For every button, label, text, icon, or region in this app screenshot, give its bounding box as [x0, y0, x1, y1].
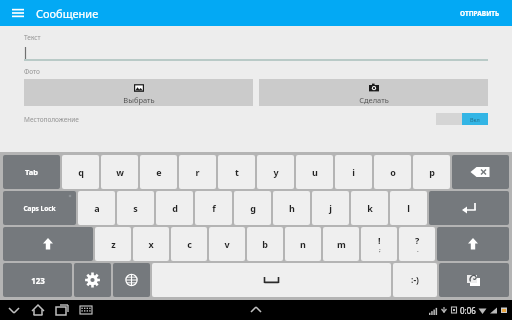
button[interactable]: ?: [399, 227, 435, 261]
button[interactable]: q: [62, 155, 99, 189]
staticText: o: [390, 166, 396, 178]
button[interactable]: e: [140, 155, 177, 189]
button[interactable]: k: [351, 191, 388, 225]
button[interactable]: j: [312, 191, 349, 225]
button[interactable]: c: [171, 227, 207, 261]
staticText: e: [156, 166, 162, 178]
button[interactable]: s: [117, 191, 154, 225]
staticText: !: [378, 234, 381, 246]
button[interactable]: l: [390, 191, 427, 225]
button[interactable]: d: [156, 191, 193, 225]
staticText: n: [300, 238, 306, 250]
staticText: z: [111, 238, 116, 250]
staticText: d: [172, 202, 178, 214]
button[interactable]: n: [285, 227, 321, 261]
staticText: i: [352, 166, 355, 178]
button[interactable]: Выбрать: [24, 79, 253, 106]
staticText: 123: [31, 275, 45, 286]
staticText: Текст: [24, 33, 41, 42]
button[interactable]: i: [335, 155, 372, 189]
staticText: m: [337, 238, 346, 250]
staticText: x: [148, 238, 154, 250]
button[interactable]: :-): [393, 263, 437, 297]
button[interactable]: r: [179, 155, 216, 189]
button[interactable]: Space: [152, 263, 391, 297]
staticText: ?: [415, 234, 420, 246]
button[interactable]: Attach: [439, 263, 509, 297]
button[interactable]: Местоположение включено: [436, 113, 488, 125]
staticText: Caps Lock: [23, 204, 56, 213]
button[interactable]: [24, 45, 488, 61]
button[interactable]: Tab: [3, 155, 60, 189]
button[interactable]: t: [218, 155, 255, 189]
staticText: q: [78, 166, 84, 178]
button[interactable]: Settings: [74, 263, 111, 297]
staticText: c: [187, 238, 192, 250]
button[interactable]: o: [374, 155, 411, 189]
staticText: Tab: [25, 167, 38, 177]
button[interactable]: h: [273, 191, 310, 225]
staticText: f: [212, 202, 216, 214]
button[interactable]: Caps Lock: [3, 191, 76, 225]
staticText: s: [133, 202, 138, 214]
staticText: u: [312, 166, 318, 178]
button[interactable]: 123: [3, 263, 72, 297]
button[interactable]: Shift: [3, 227, 93, 261]
button[interactable]: Menu: [8, 3, 28, 23]
button[interactable]: Change language: [113, 263, 150, 297]
button[interactable]: Сделать: [259, 79, 488, 106]
button[interactable]: u: [296, 155, 333, 189]
staticText: 0:06: [460, 305, 476, 316]
button[interactable]: z: [95, 227, 131, 261]
button[interactable]: Expand: [248, 302, 264, 318]
staticText: ОТПРАВИТЬ: [460, 9, 500, 18]
button[interactable]: Recents: [54, 302, 70, 318]
button[interactable]: Enter: [429, 191, 509, 225]
button[interactable]: p: [413, 155, 450, 189]
staticText: g: [250, 202, 256, 214]
staticText: Местоположение: [24, 115, 79, 124]
button[interactable]: !: [361, 227, 397, 261]
staticText: Сделать: [359, 95, 389, 105]
staticText: ;: [379, 246, 381, 254]
button[interactable]: x: [133, 227, 169, 261]
button[interactable]: Hide keyboard: [6, 302, 22, 318]
staticText: a: [94, 202, 100, 214]
button[interactable]: Shift: [437, 227, 509, 261]
staticText: k: [367, 202, 373, 214]
staticText: j: [329, 202, 332, 214]
staticText: b: [262, 238, 268, 250]
staticText: v: [224, 238, 230, 250]
staticText: t: [235, 166, 239, 178]
button[interactable]: w: [101, 155, 138, 189]
staticText: r: [195, 166, 200, 178]
button[interactable]: g: [234, 191, 271, 225]
staticText: h: [289, 202, 295, 214]
staticText: Выбрать: [123, 95, 155, 105]
button[interactable]: Home: [30, 302, 46, 318]
staticText: :-): [411, 274, 419, 286]
staticText: Сообщение: [36, 6, 99, 21]
staticText: w: [116, 166, 124, 178]
staticText: Вкл: [470, 116, 480, 123]
button[interactable]: y: [257, 155, 294, 189]
staticText: l: [407, 202, 410, 214]
staticText: Фото: [24, 67, 40, 76]
button[interactable]: Backspace: [452, 155, 509, 189]
staticText: p: [429, 166, 435, 178]
button[interactable]: Switch keyboard: [78, 302, 94, 318]
button[interactable]: m: [323, 227, 359, 261]
button[interactable]: a: [78, 191, 115, 225]
button[interactable]: b: [247, 227, 283, 261]
button[interactable]: ОТПРАВИТЬ: [456, 5, 504, 22]
staticText: .: [417, 246, 419, 254]
button[interactable]: f: [195, 191, 232, 225]
button[interactable]: v: [209, 227, 245, 261]
staticText: y: [273, 166, 279, 178]
